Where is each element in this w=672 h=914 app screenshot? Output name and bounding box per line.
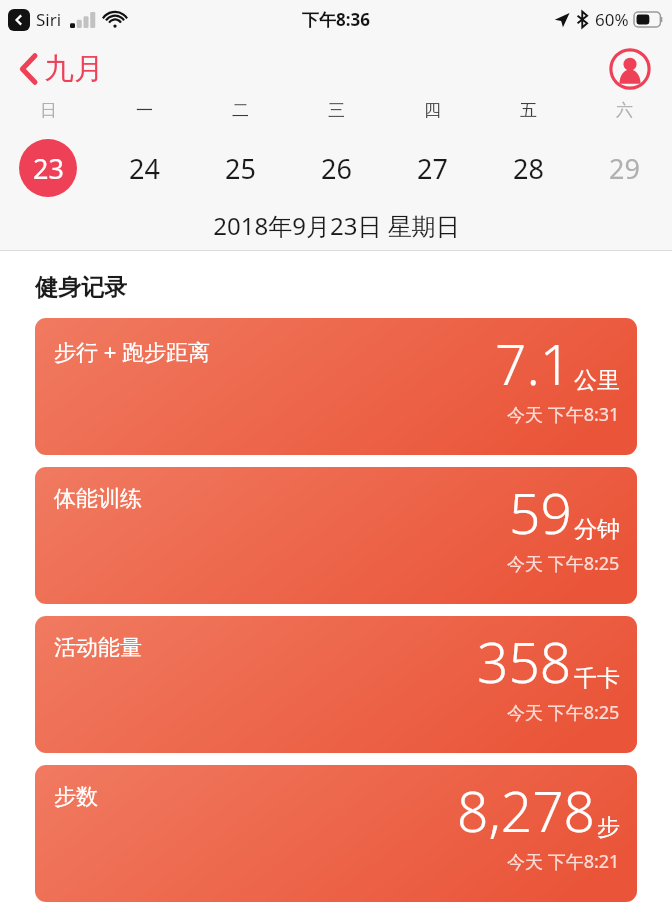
staticText: 7.1 [495, 326, 572, 401]
button[interactable]: 体能训练 [35, 467, 637, 604]
staticText: 59 [509, 475, 572, 550]
staticText: 三 [328, 100, 345, 121]
button[interactable]: 27 [384, 137, 480, 199]
staticText: 公里 [574, 366, 620, 395]
staticText: 六 [616, 100, 633, 121]
staticText: 358 [477, 624, 572, 699]
staticText: 一 [136, 100, 153, 121]
staticText: 27 [417, 150, 448, 187]
button[interactable]: 28 [480, 137, 576, 199]
staticText: 25 [225, 150, 256, 187]
staticText: 步数 [54, 783, 98, 811]
button[interactable]: 步行 + 跑步距离 [35, 318, 637, 455]
staticText: 体能训练 [54, 485, 142, 513]
staticText: 今天 下午8:31 [507, 402, 620, 427]
staticText: 28 [513, 150, 544, 187]
staticText: 步行 + 跑步距离 [54, 336, 211, 366]
button[interactable]: 24 [96, 137, 192, 199]
staticText: 2018年9月23日 星期日 [213, 209, 460, 242]
staticText: 活动能量 [54, 634, 142, 662]
button[interactable]: 步数 [35, 765, 637, 902]
button[interactable]: 29 [576, 137, 672, 199]
button[interactable]: Profile [608, 47, 652, 91]
staticText: 29 [609, 150, 640, 187]
staticText: 60% [595, 8, 629, 31]
staticText: 24 [129, 150, 160, 187]
staticText: Siri [36, 8, 62, 31]
staticText: 今天 下午8:21 [507, 849, 620, 874]
staticText: 日 [40, 100, 57, 121]
button[interactable]: 活动能量 [35, 616, 637, 753]
button[interactable]: 九月 [0, 44, 114, 94]
staticText: 8,278 [457, 773, 595, 848]
staticText: 23 [33, 150, 64, 187]
staticText: 千卡 [574, 664, 620, 693]
button[interactable]: 23 [0, 137, 96, 199]
staticText: 四 [424, 100, 441, 121]
staticText: 九月 [44, 50, 104, 88]
staticText: 五 [520, 100, 537, 121]
staticText: 二 [232, 100, 249, 121]
staticText: 26 [321, 150, 352, 187]
staticText: 步 [597, 813, 620, 842]
staticText: 分钟 [574, 515, 620, 544]
staticText: 健身记录 [35, 273, 127, 302]
button[interactable]: 26 [288, 137, 384, 199]
staticText: 下午8:36 [302, 8, 370, 31]
button[interactable]: 25 [192, 137, 288, 199]
staticText: 今天 下午8:25 [507, 700, 620, 725]
staticText: 今天 下午8:25 [507, 551, 620, 576]
